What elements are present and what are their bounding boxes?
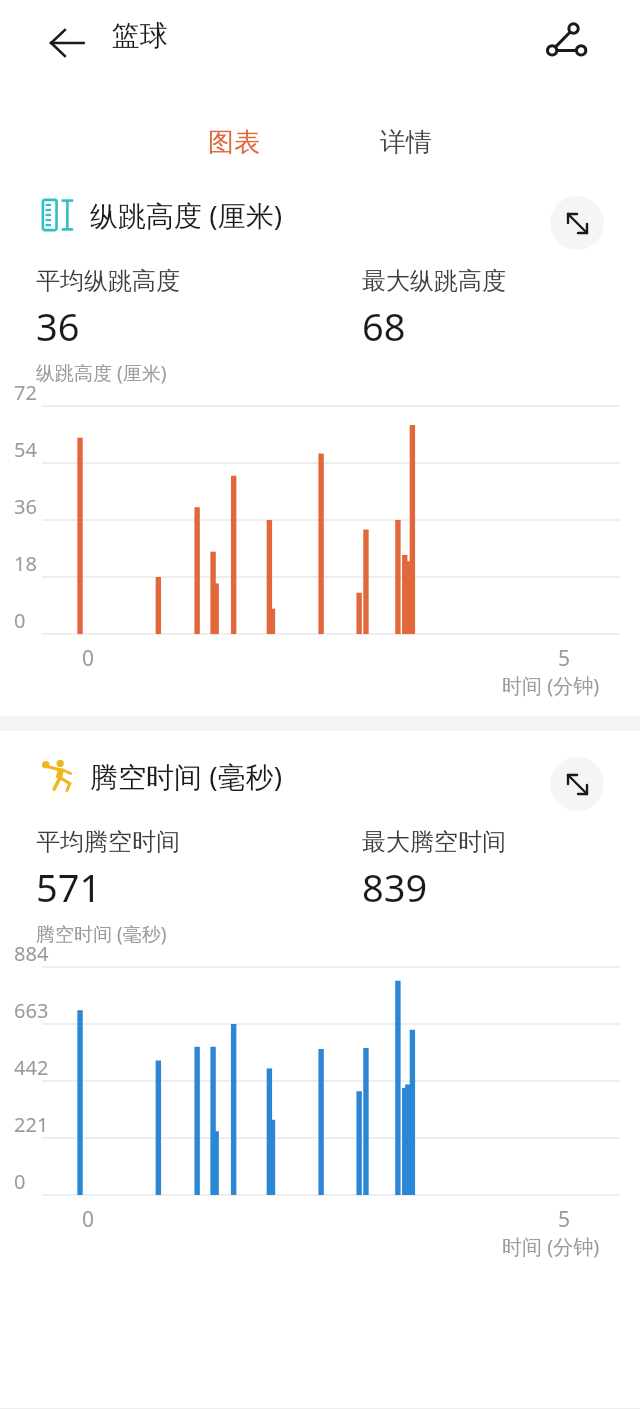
staticText: 72	[14, 379, 37, 406]
staticText: 54	[14, 436, 37, 463]
staticText: 平均腾空时间	[36, 827, 180, 857]
staticText: 18	[14, 550, 37, 577]
button[interactable]: 纵跳高度 (厘米)	[40, 196, 283, 234]
staticText: 腾空时间 (毫秒)	[36, 921, 167, 947]
staticText: 0	[82, 644, 95, 673]
staticText: 221	[14, 1111, 49, 1138]
button[interactable]: 详情	[332, 86, 480, 168]
staticText: 纵跳高度 (厘米)	[36, 360, 167, 386]
staticText: 0	[14, 607, 26, 634]
staticText: 最大腾空时间	[362, 827, 506, 857]
staticText: 839	[362, 861, 428, 913]
button[interactable]: 腾空时间 (毫秒)	[40, 757, 283, 795]
staticText: 571	[36, 861, 102, 913]
staticText: 详情	[380, 126, 432, 159]
button[interactable]: Expand chart	[550, 196, 604, 250]
staticText: 平均纵跳高度	[36, 266, 180, 296]
staticText: 0	[82, 1205, 95, 1234]
staticText: 663	[14, 997, 49, 1024]
button[interactable]: Expand chart	[550, 757, 604, 811]
staticText: 442	[14, 1054, 49, 1081]
button[interactable]: 图表	[160, 86, 308, 168]
staticText: 时间 (分钟)	[502, 1233, 600, 1260]
staticText: 0	[14, 1168, 26, 1195]
staticText: 腾空时间 (毫秒)	[90, 757, 283, 795]
staticText: 纵跳高度 (厘米)	[90, 196, 283, 234]
staticText: 5	[558, 644, 571, 673]
staticText: 68	[362, 300, 406, 352]
staticText: 图表	[208, 126, 260, 159]
button[interactable]: Share	[532, 8, 600, 76]
button[interactable]: Back	[38, 14, 96, 72]
staticText: 最大纵跳高度	[362, 266, 506, 296]
staticText: 884	[14, 940, 49, 967]
staticText: 5	[558, 1205, 571, 1234]
staticText: 篮球	[112, 18, 168, 53]
staticText: 36	[36, 300, 80, 352]
staticText: 时间 (分钟)	[502, 672, 600, 699]
staticText: 36	[14, 493, 37, 520]
